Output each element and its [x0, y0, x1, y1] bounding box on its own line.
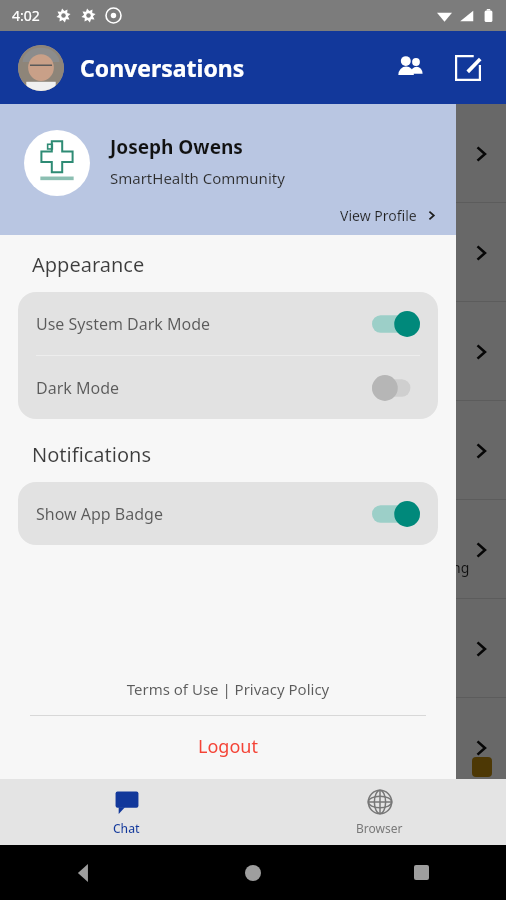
button[interactable]: Terms of Use | Privacy Policy [0, 675, 456, 703]
staticText: Chat [113, 820, 140, 836]
staticText: 4:02 [12, 6, 40, 25]
staticText: Joseph Owens [110, 134, 243, 160]
staticText: Dark Mode [36, 377, 120, 399]
staticText: Browser [356, 820, 403, 836]
staticText: Show App Badge [36, 503, 163, 525]
staticText: Appearance [32, 251, 145, 278]
button[interactable]: New message [448, 48, 488, 88]
button[interactable]: Chat [0, 779, 253, 845]
button[interactable]: Contacts [390, 48, 430, 88]
staticText: Notifications [32, 441, 151, 468]
staticText: View Profile [340, 206, 417, 225]
button[interactable]: Profile [18, 45, 64, 91]
staticText: Conversations [80, 52, 245, 83]
button[interactable]: Dark Mode [18, 356, 438, 419]
button[interactable]: View Profile [336, 202, 442, 229]
button[interactable]: Use System Dark Mode [18, 292, 438, 355]
button[interactable]: Browser [253, 779, 506, 845]
button[interactable]: Logout [0, 730, 456, 763]
staticText: Use System Dark Mode [36, 313, 211, 335]
button[interactable]: Show App Badge [18, 482, 438, 545]
staticText: ng [452, 558, 470, 577]
staticText: SmartHealth Community [110, 168, 285, 188]
